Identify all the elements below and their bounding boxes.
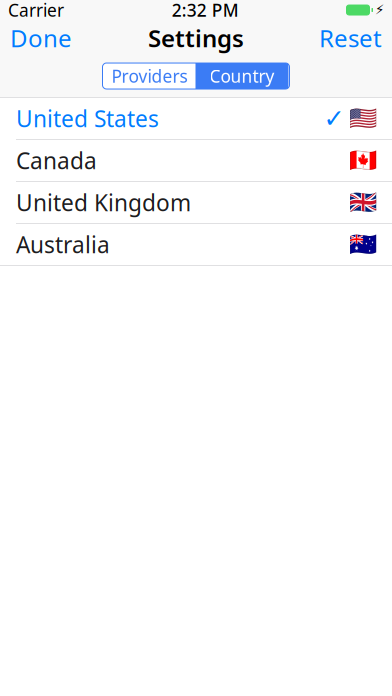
button[interactable]: Country bbox=[195, 63, 288, 89]
staticText: Australia bbox=[16, 229, 110, 259]
staticText: Carrier bbox=[8, 0, 64, 21]
button[interactable]: Providers bbox=[103, 63, 195, 89]
staticText: 🇺🇸 bbox=[349, 106, 377, 131]
staticText: Providers bbox=[111, 64, 187, 87]
staticText: Reset bbox=[319, 22, 382, 54]
staticText: 🇦🇺 bbox=[349, 232, 377, 257]
staticText: Country bbox=[209, 64, 274, 87]
staticText: Settings bbox=[148, 22, 244, 54]
staticText: Done bbox=[10, 22, 72, 54]
staticText: ⚡︎ bbox=[375, 2, 384, 17]
staticText: 2:32 PM bbox=[172, 0, 239, 21]
staticText: United States bbox=[16, 103, 159, 133]
staticText: United Kingdom bbox=[16, 187, 191, 217]
button[interactable]: Australia bbox=[0, 224, 392, 266]
staticText: ✓ bbox=[323, 104, 344, 133]
staticText: Canada bbox=[16, 145, 97, 175]
button[interactable]: Reset bbox=[309, 20, 392, 56]
button[interactable]: United Kingdom bbox=[0, 182, 392, 224]
button[interactable]: United States bbox=[0, 98, 392, 140]
staticText: 🇬🇧 bbox=[349, 190, 377, 215]
button[interactable]: Canada bbox=[0, 140, 392, 182]
button[interactable]: Done bbox=[0, 20, 82, 56]
staticText: 🇨🇦 bbox=[349, 148, 377, 173]
